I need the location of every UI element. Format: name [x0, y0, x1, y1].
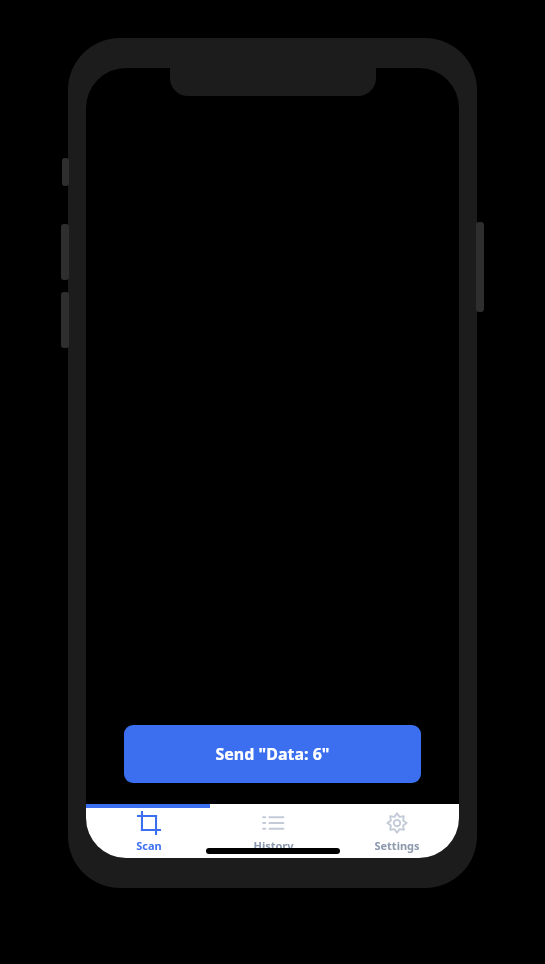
staticText: History	[253, 838, 294, 853]
staticText: Scan	[136, 838, 162, 853]
button[interactable]: History	[211, 804, 335, 858]
staticText: Settings	[374, 838, 420, 853]
staticText: Send "Data: 6"	[215, 743, 330, 765]
button[interactable]: Scan	[86, 804, 211, 858]
button[interactable]: Send "Data: 6"	[124, 725, 421, 783]
button[interactable]: Settings	[335, 804, 459, 858]
